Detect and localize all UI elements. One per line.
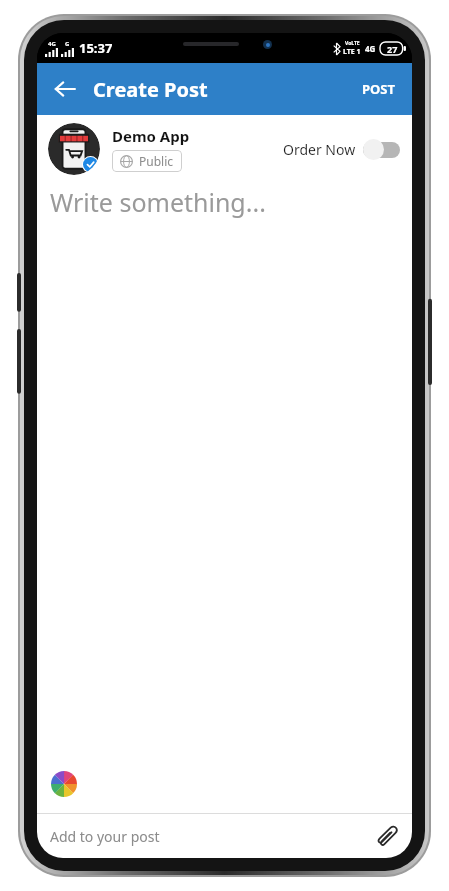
button[interactable]: Background colour	[47, 767, 81, 801]
button[interactable]: Add to your post	[37, 814, 412, 858]
staticText: 4G	[365, 43, 376, 54]
staticText: 15:37	[79, 39, 113, 57]
staticText: 27	[387, 43, 398, 55]
staticText: Public	[139, 153, 174, 169]
button[interactable]: Attach file	[369, 819, 403, 853]
staticText: Add to your post	[50, 827, 160, 846]
staticText: VoLTE	[345, 40, 360, 47]
staticText: Create Post	[93, 76, 208, 103]
staticText: 4G	[48, 40, 56, 48]
button[interactable]: Profile picture	[48, 123, 100, 175]
staticText: LTE 1	[343, 47, 361, 57]
button[interactable]: Public	[112, 150, 182, 172]
button[interactable]: Back	[43, 67, 87, 111]
staticText: Demo App	[112, 126, 190, 146]
button[interactable]: POST	[352, 72, 406, 106]
button[interactable]: Order Now	[283, 139, 400, 160]
staticText: POST	[362, 80, 396, 98]
staticText: G	[65, 40, 70, 48]
staticText: Order Now	[283, 140, 356, 159]
staticText: Write something...	[50, 185, 266, 219]
